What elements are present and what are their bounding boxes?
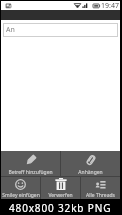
staticText: Betreff hinzufügen xyxy=(8,169,53,176)
staticText: 19:47 xyxy=(101,1,119,10)
staticText: Smiley einfügen xyxy=(2,192,40,199)
button[interactable]: An xyxy=(3,23,118,37)
staticText: Alle Threads xyxy=(86,192,115,199)
staticText: An xyxy=(6,25,15,35)
button[interactable]: Betreff hinzufügen xyxy=(1,151,60,176)
staticText: Anhängen xyxy=(78,169,103,176)
button[interactable]: Smiley einfügen xyxy=(1,177,40,199)
staticText: Verwerfen xyxy=(48,192,73,199)
button[interactable]: Anhängen xyxy=(61,151,120,176)
button[interactable]: Alle Threads xyxy=(81,177,120,199)
staticText: 480x800 32kb PNG xyxy=(9,201,112,215)
button[interactable]: Verwerfen xyxy=(41,177,80,199)
